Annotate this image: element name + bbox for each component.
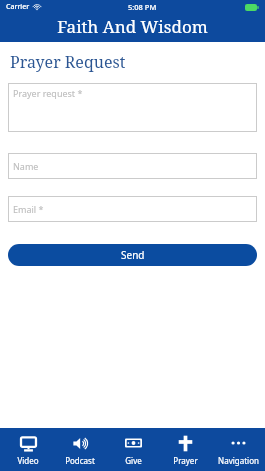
staticText: Send xyxy=(121,248,145,262)
staticText: Video xyxy=(17,455,39,466)
staticText: Faith And Wisdom xyxy=(57,15,208,38)
staticText: Prayer xyxy=(173,455,198,466)
staticText: Give xyxy=(125,455,142,466)
button[interactable]: Podcast xyxy=(55,431,105,469)
button[interactable]: Navigation xyxy=(213,431,263,469)
staticText: Podcast xyxy=(65,455,95,466)
staticText: Email * xyxy=(13,203,44,215)
staticText: Prayer Request xyxy=(10,51,126,73)
button[interactable]: Name xyxy=(8,153,257,179)
button[interactable]: Video xyxy=(3,431,53,469)
button[interactable]: Prayer xyxy=(160,431,210,469)
button[interactable]: Prayer request * xyxy=(8,83,257,132)
button[interactable]: Give xyxy=(108,431,158,469)
staticText: 5:08 PM xyxy=(128,2,157,12)
staticText: Carrier xyxy=(6,2,30,12)
staticText: Prayer request * xyxy=(13,87,83,99)
button[interactable]: Email * xyxy=(8,196,257,222)
button[interactable]: Send xyxy=(8,244,257,266)
staticText: Navigation xyxy=(218,455,259,466)
staticText: Name xyxy=(13,160,39,172)
